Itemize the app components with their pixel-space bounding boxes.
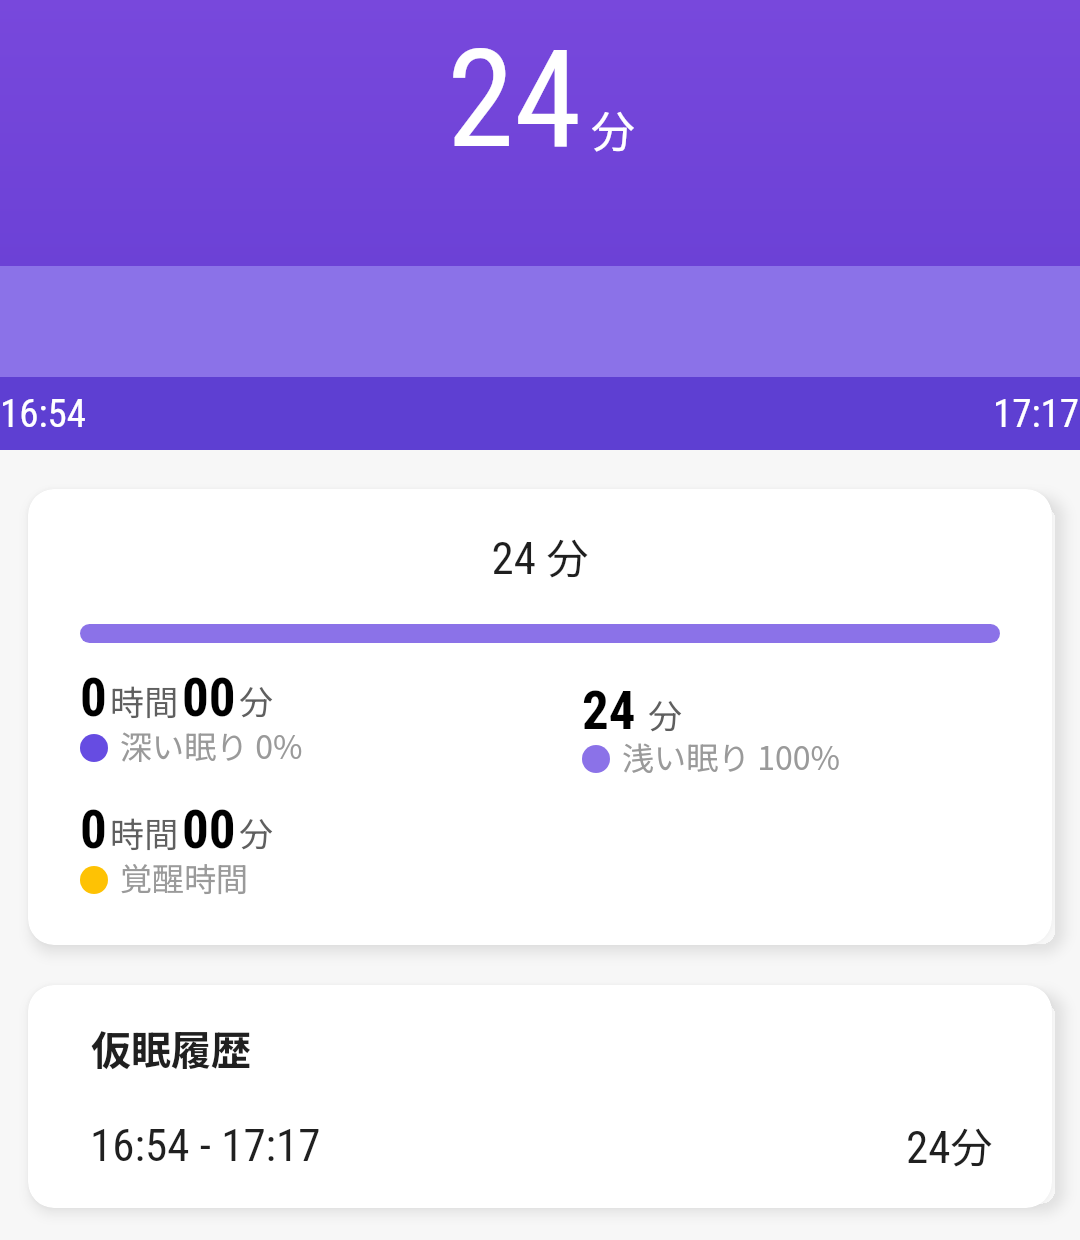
staticText: 0 — [80, 667, 107, 729]
staticText: 24 — [447, 20, 582, 179]
button[interactable]: 24 分 — [28, 489, 1052, 945]
staticText: 24 分 — [28, 525, 1052, 586]
staticText: 0 — [80, 799, 107, 861]
staticText: 時間 — [110, 808, 178, 857]
staticText: 17:17 — [993, 391, 1080, 437]
staticText: 16:54 — [0, 391, 87, 437]
staticText: 分 — [239, 808, 273, 857]
staticText: 16:54 - 17:17 — [90, 1119, 321, 1172]
staticText: 24分 — [906, 1114, 993, 1175]
staticText: 覚醒時間 — [120, 854, 249, 900]
staticText: 時間 — [110, 676, 178, 725]
button[interactable]: 16:54 - 17:17 — [28, 1093, 1052, 1173]
staticText: 分 — [648, 690, 682, 739]
staticText: 分 — [591, 97, 635, 161]
staticText: 仮眠履歴 — [91, 1019, 251, 1077]
staticText: 浅い眠り 100% — [622, 733, 840, 779]
staticText: 24 — [582, 680, 636, 742]
staticText: 00 — [182, 799, 236, 861]
staticText: 分 — [239, 676, 273, 725]
staticText: 深い眠り 0% — [120, 722, 303, 768]
staticText: 00 — [182, 667, 236, 729]
